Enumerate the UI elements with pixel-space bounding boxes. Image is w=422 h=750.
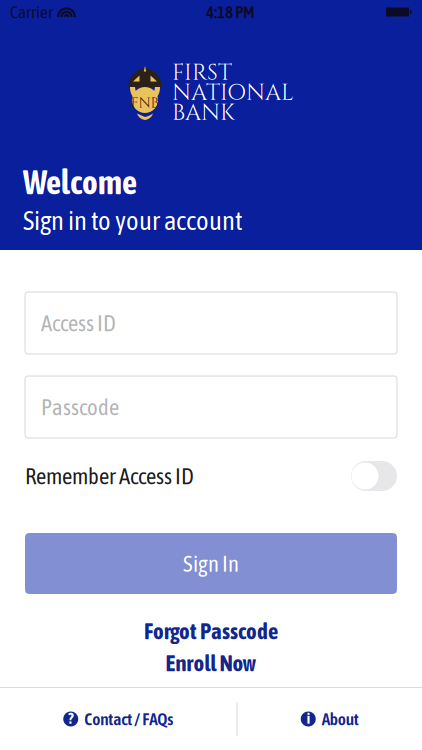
staticText: BANK [172,98,235,128]
button[interactable]: Enroll Now [25,651,397,675]
staticText: Sign in to your account [23,205,243,236]
staticText: FIRST [172,58,232,88]
button[interactable]: i [301,697,359,741]
staticText: Forgot Passcode [144,618,278,644]
staticText: FNB [130,93,159,113]
staticText: Sign In [183,550,239,576]
staticText: 4:18 PM [206,2,255,22]
staticText: About [322,709,359,729]
button[interactable]: ? [63,697,173,741]
staticText: Access ID [41,310,116,336]
staticText: Enroll Now [165,650,256,676]
button[interactable]: Remember Access ID [351,461,397,491]
staticText: Contact / FAQs [84,709,173,729]
staticText: ? [68,710,73,727]
staticText: i [307,710,310,727]
staticText: Passcode [41,394,119,420]
staticText: Carrier [10,2,53,22]
button[interactable]: Sign In [25,533,397,594]
staticText: Remember Access ID [25,463,194,489]
staticText: NATIONAL [172,78,294,108]
button[interactable]: Forgot Passcode [25,619,397,643]
staticText: Welcome [23,163,137,201]
